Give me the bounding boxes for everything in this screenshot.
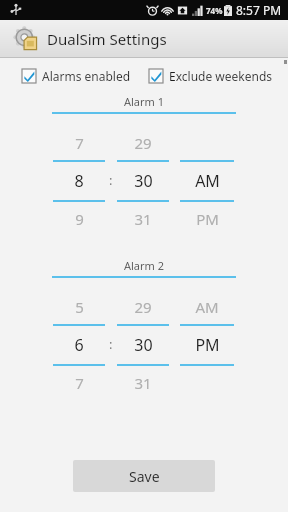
button[interactable]: Save	[73, 460, 215, 492]
staticText: AM	[195, 170, 220, 192]
button[interactable]: 5	[53, 290, 105, 400]
staticText: 74%	[206, 5, 223, 16]
staticText: 29	[134, 133, 152, 153]
staticText: 7	[75, 133, 84, 153]
staticText: 29	[134, 297, 152, 317]
button[interactable]: Exclude weekends	[149, 66, 273, 86]
staticText: 7	[75, 373, 84, 393]
staticText: 6	[74, 334, 84, 356]
staticText: :	[109, 171, 113, 189]
button[interactable]: 29	[117, 126, 169, 236]
button[interactable]: AM	[180, 290, 234, 400]
staticText: DualSim Settings	[47, 29, 167, 49]
staticText: Save	[129, 467, 160, 486]
staticText: Alarm 2	[52, 258, 236, 273]
staticText: 9	[75, 209, 84, 229]
staticText: 30	[134, 334, 153, 356]
staticText: Exclude weekends	[169, 68, 273, 84]
staticText: 30	[134, 170, 153, 192]
staticText: 31	[134, 373, 152, 393]
staticText: 8	[74, 170, 84, 192]
staticText: Alarm 1	[52, 94, 236, 109]
button[interactable]: 29	[117, 290, 169, 400]
staticText: 31	[134, 209, 152, 229]
button[interactable]: Alarms enabled	[22, 66, 131, 86]
staticText: AM	[195, 297, 219, 317]
button[interactable]: AM	[180, 126, 234, 236]
staticText: :	[109, 335, 113, 353]
staticText: 5	[75, 297, 84, 317]
staticText: Alarms enabled	[42, 68, 131, 84]
staticText: PM	[196, 209, 219, 229]
staticText: 8:57 PM	[236, 2, 282, 18]
staticText: PM	[195, 334, 220, 356]
button[interactable]: 7	[53, 126, 105, 236]
